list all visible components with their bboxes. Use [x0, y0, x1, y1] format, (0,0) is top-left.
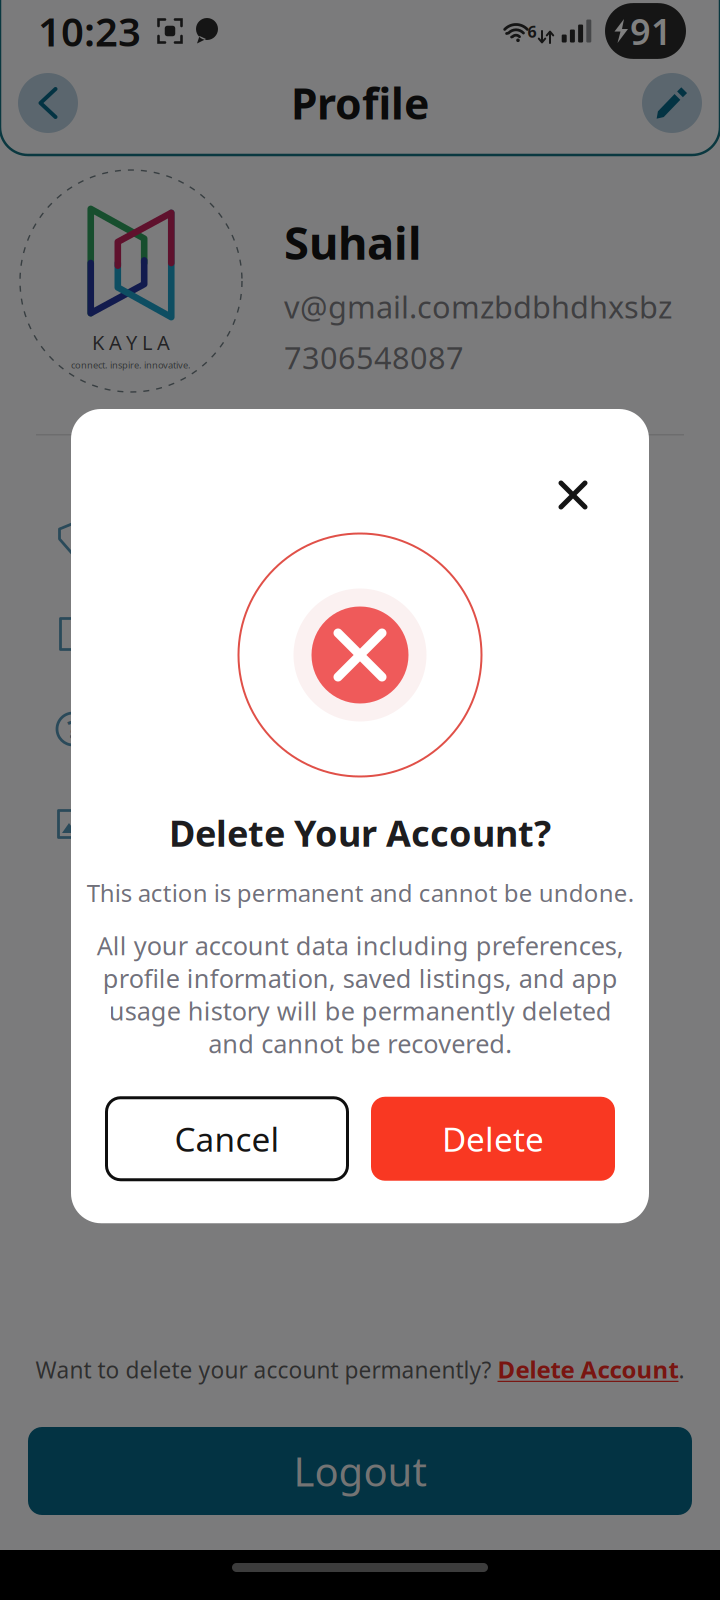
button[interactable]: My Listings: [0, 776, 720, 871]
button[interactable]: Logout: [28, 1427, 692, 1515]
staticText: .: [678, 1354, 684, 1385]
staticText: 6: [527, 21, 536, 42]
staticText: Delete Your Account?: [169, 809, 551, 857]
staticText: Help & Support: [118, 706, 367, 752]
staticText: Want to delete your account permanently?: [35, 1354, 497, 1385]
button[interactable]: Delete: [371, 1097, 615, 1181]
staticText: Terms & Conditions: [118, 611, 436, 657]
button[interactable]: Terms & Conditions: [0, 586, 720, 681]
button[interactable]: ?: [0, 681, 720, 776]
staticText: This action is permanent and cannot be u…: [86, 877, 633, 909]
staticText: 7306548087: [284, 337, 464, 378]
staticText: All your account data including preferen…: [96, 929, 623, 1060]
staticText: Suhail: [284, 212, 422, 272]
button[interactable]: Cancel: [105, 1096, 349, 1181]
staticText: KAYLA: [92, 329, 170, 356]
staticText: Delete: [442, 1117, 544, 1161]
staticText: Delete Account: [497, 1353, 678, 1385]
staticText: Cancel: [174, 1117, 279, 1161]
button[interactable]: Privacy Policy: [0, 491, 720, 586]
staticText: v@gmail.comzbdbhdhxsbz: [284, 286, 672, 327]
staticText: 91: [630, 7, 672, 55]
button[interactable]: Close: [547, 469, 599, 521]
staticText: My Listings: [118, 801, 301, 847]
button[interactable]: Want to delete your account permanently?: [0, 1353, 720, 1385]
staticText: connect. inspire. innovative.: [71, 359, 191, 371]
staticText: Logout: [293, 1444, 426, 1497]
staticText: Profile: [291, 75, 429, 131]
button[interactable]: Back: [18, 73, 78, 133]
staticText: ?: [67, 712, 79, 746]
button[interactable]: Edit profile: [642, 73, 702, 133]
staticText: 10:23: [38, 4, 141, 57]
staticText: Privacy Policy: [118, 516, 338, 562]
